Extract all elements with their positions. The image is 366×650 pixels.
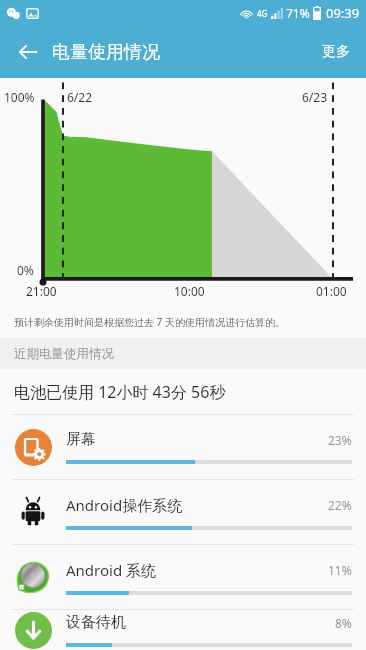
staticText: 8% — [335, 615, 352, 631]
staticText: 22% — [328, 497, 352, 513]
button[interactable]: Android操作系统 — [0, 480, 366, 544]
staticText: 电池已使用 12小时 43分 56秒 — [14, 381, 226, 403]
staticText: Android 系统 — [66, 560, 328, 580]
staticText: 6/23 — [302, 89, 328, 105]
staticText: 屏幕 — [66, 430, 328, 449]
button[interactable]: Back — [8, 32, 48, 72]
staticText: Android操作系统 — [66, 495, 328, 515]
button[interactable]: 屏幕 — [0, 415, 366, 479]
staticText: 设备待机 — [66, 613, 335, 632]
staticText: 6/22 — [67, 89, 93, 105]
button[interactable]: 电池已使用 12小时 43分 56秒 — [0, 369, 366, 414]
button[interactable]: Android 系统 — [0, 545, 366, 609]
staticText: 21:00 — [26, 283, 57, 299]
staticText: 10:00 — [174, 283, 205, 299]
staticText: 预计剩余使用时间是根据您过去 7 天的使用情况进行估算的。 — [14, 315, 285, 329]
staticText: 0% — [17, 262, 34, 278]
staticText: 更多 — [322, 43, 350, 61]
staticText: 100% — [4, 89, 35, 105]
staticText: 09:39 — [326, 4, 360, 22]
staticText: 23% — [328, 432, 352, 448]
staticText: 71% — [286, 5, 310, 21]
staticText: 4G — [257, 8, 268, 19]
button[interactable]: 设备待机 — [0, 610, 366, 650]
staticText: 11% — [328, 562, 352, 578]
button[interactable]: 更多 — [312, 35, 360, 69]
staticText: 电量使用情况 — [52, 41, 160, 64]
staticText: 01:00 — [316, 283, 347, 299]
staticText: 近期电量使用情况 — [14, 346, 114, 362]
